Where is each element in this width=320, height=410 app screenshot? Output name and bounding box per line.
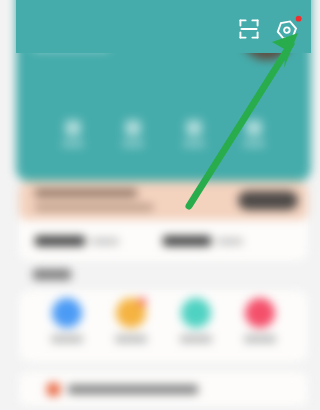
button[interactable]: Quick entry [183,120,205,147]
button[interactable]: Quick entry [62,120,84,147]
button[interactable]: Quick entry [122,120,144,147]
button[interactable]: Service shortcut [51,298,83,343]
button[interactable]: Scan QR code [236,16,262,42]
button[interactable]: Open promo [238,191,298,210]
button[interactable]: Camera [274,15,302,43]
button[interactable] [19,372,308,406]
button[interactable]: Open promo [19,181,308,220]
button[interactable]: Quick entry [243,120,265,147]
button[interactable]: Service shortcut [115,298,147,343]
button[interactable]: Profile avatar [240,6,294,60]
button[interactable]: Service shortcut [180,298,212,343]
button[interactable]: Service shortcut [244,298,276,343]
button[interactable] [35,236,163,246]
